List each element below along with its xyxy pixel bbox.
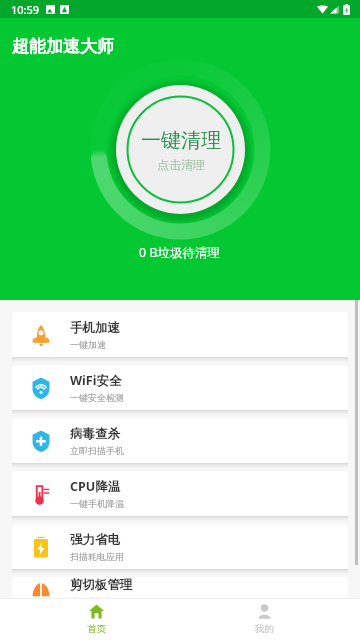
button[interactable]: 首页 bbox=[12, 598, 180, 640]
staticText: CPU降温 bbox=[70, 478, 121, 495]
button[interactable]: WiFi安全 bbox=[12, 365, 348, 410]
staticText: 一键清理 bbox=[141, 128, 221, 153]
staticText: 一键加速 bbox=[70, 339, 106, 350]
staticText: WiFi安全 bbox=[70, 372, 122, 389]
button[interactable]: 强力省电 bbox=[12, 524, 348, 569]
button[interactable]: 剪切板管理 bbox=[12, 577, 348, 598]
staticText: 手机加速 bbox=[70, 320, 120, 336]
staticText: 强力省电 bbox=[70, 532, 120, 548]
staticText: 10:59 bbox=[11, 2, 40, 17]
button[interactable]: 一键清理 bbox=[116, 85, 245, 214]
staticText: 一键手机降温 bbox=[70, 498, 124, 509]
staticText: 立即扫描手机 bbox=[70, 445, 124, 456]
staticText: 清理剪切板 bbox=[70, 596, 115, 598]
button[interactable]: 手机加速 bbox=[12, 312, 348, 357]
staticText: 首页 bbox=[87, 623, 106, 635]
staticText: 剪切板管理 bbox=[70, 577, 133, 593]
staticText: 一键安全检测 bbox=[70, 392, 124, 403]
button[interactable]: CPU降温 bbox=[12, 471, 348, 516]
staticText: 点击清理 bbox=[157, 157, 205, 172]
staticText: 病毒查杀 bbox=[70, 426, 120, 442]
staticText: 超能加速大师 bbox=[12, 36, 114, 57]
staticText: 扫描耗电应用 bbox=[70, 551, 124, 562]
button[interactable]: 我的 bbox=[180, 598, 348, 640]
staticText: 0 B垃圾待清理 bbox=[139, 244, 221, 261]
staticText: 我的 bbox=[255, 623, 274, 635]
button[interactable]: 病毒查杀 bbox=[12, 418, 348, 463]
